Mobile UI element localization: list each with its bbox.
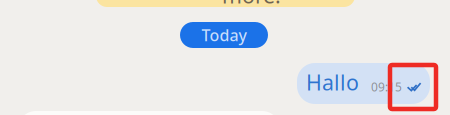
staticText: more! bbox=[222, 0, 281, 9]
staticText: 09:15 bbox=[371, 79, 402, 95]
staticText: Today bbox=[201, 24, 246, 46]
staticText: Hallo bbox=[306, 68, 359, 96]
button[interactable]: Today bbox=[180, 22, 268, 48]
